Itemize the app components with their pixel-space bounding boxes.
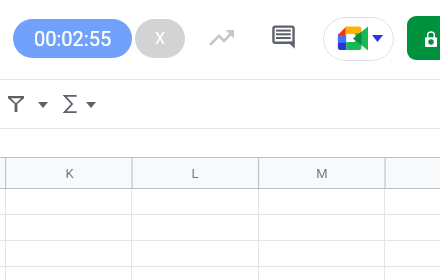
button[interactable]: Stop timer	[135, 19, 185, 58]
staticText: 00:02:55	[34, 27, 112, 50]
staticText: L	[191, 166, 199, 181]
button[interactable]: L	[132, 158, 258, 189]
button[interactable]: Functions	[56, 89, 85, 118]
button[interactable]: Explore	[200, 15, 242, 59]
button[interactable]: Filter options	[28, 90, 57, 119]
button[interactable]: Function options	[76, 90, 105, 119]
staticText: M	[316, 166, 328, 181]
button[interactable]: Join Meet call	[323, 17, 394, 61]
button[interactable]: 00:02:55	[13, 19, 132, 58]
staticText: X	[155, 29, 166, 48]
button[interactable]: Comments	[262, 15, 306, 59]
button[interactable]: K	[6, 158, 132, 189]
staticText: K	[65, 166, 74, 181]
button[interactable]: Share	[407, 16, 440, 60]
button[interactable]: Filter	[1, 89, 30, 118]
button[interactable]: M	[258, 158, 385, 189]
